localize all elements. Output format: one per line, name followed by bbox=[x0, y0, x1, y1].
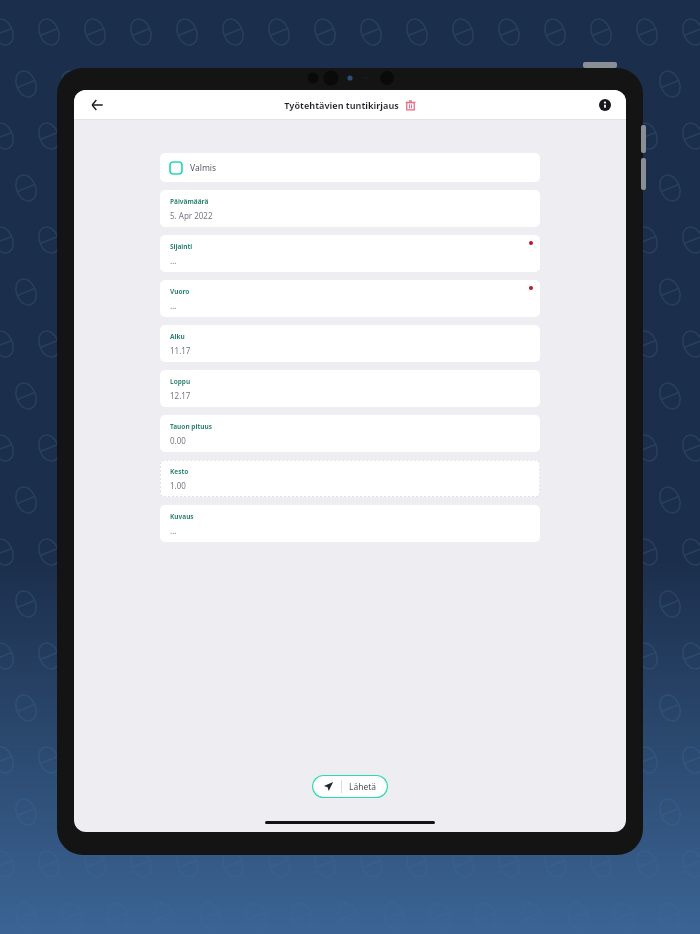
staticText: Tauon pituus bbox=[170, 422, 212, 431]
staticText: Sijainti bbox=[170, 242, 193, 251]
button[interactable]: Loppu bbox=[160, 370, 540, 407]
button[interactable]: Kuvaus bbox=[160, 505, 540, 542]
staticText: 1.00 bbox=[170, 480, 186, 491]
staticText: Kesto bbox=[170, 467, 189, 476]
staticText: Kuvaus bbox=[170, 512, 194, 521]
staticText: 12.17 bbox=[170, 390, 191, 401]
button[interactable]: Back bbox=[86, 94, 108, 116]
button[interactable]: Kesto bbox=[160, 460, 540, 497]
staticText: … bbox=[170, 525, 177, 536]
staticText: Alku bbox=[170, 332, 185, 341]
staticText: 11.17 bbox=[170, 345, 191, 356]
staticText: Vuoro bbox=[170, 287, 190, 296]
staticText: Työtehtävien tuntikirjaus bbox=[284, 99, 399, 111]
button[interactable]: Lähetä bbox=[312, 775, 388, 798]
button[interactable]: Tauon pituus bbox=[160, 415, 540, 452]
button[interactable]: Delete bbox=[405, 100, 416, 111]
staticText: … bbox=[170, 255, 177, 266]
button[interactable]: Alku bbox=[160, 325, 540, 362]
staticText: 0.00 bbox=[170, 435, 186, 446]
staticText: Valmis bbox=[190, 162, 217, 174]
staticText: … bbox=[170, 300, 177, 311]
button[interactable]: Valmis bbox=[160, 153, 540, 182]
button[interactable]: Sijainti bbox=[160, 235, 540, 272]
staticText: Lähetä bbox=[349, 781, 377, 793]
staticText: Päivämäärä bbox=[170, 197, 209, 206]
button[interactable]: Vuoro bbox=[160, 280, 540, 317]
button[interactable]: Info bbox=[598, 98, 612, 112]
button[interactable]: Päivämäärä bbox=[160, 190, 540, 227]
staticText: 5. Apr 2022 bbox=[170, 210, 213, 221]
staticText: Loppu bbox=[170, 377, 191, 386]
